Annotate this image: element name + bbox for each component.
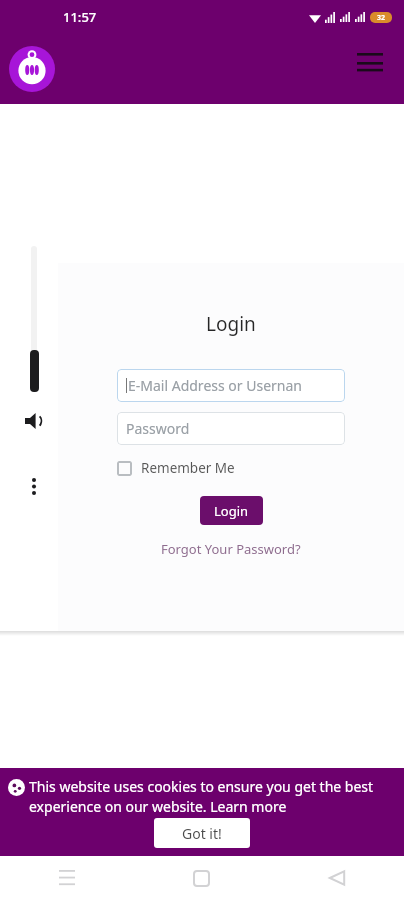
staticText: E-Mail Address or Usernan xyxy=(128,376,302,395)
button[interactable]: Forgot Your Password? xyxy=(161,540,301,558)
button[interactable]: Volume xyxy=(21,408,47,434)
staticText: Login xyxy=(214,502,249,520)
button[interactable]: Got it! xyxy=(154,818,250,848)
staticText: Got it! xyxy=(182,824,222,843)
button[interactable]: Back xyxy=(269,856,404,900)
button[interactable]: Home logo xyxy=(9,46,55,92)
staticText: 11:57 xyxy=(63,8,97,26)
button[interactable]: E-Mail Address or Usernan xyxy=(117,369,345,402)
button[interactable]: Login xyxy=(200,496,263,525)
button[interactable]: Home xyxy=(134,856,269,900)
button[interactable]: More volume options xyxy=(12,464,56,508)
staticText: Password xyxy=(126,419,190,438)
staticText: Remember Me xyxy=(141,459,235,477)
staticText: This website uses cookies to ensure you … xyxy=(29,777,392,816)
button[interactable]: Recents xyxy=(0,856,134,900)
button[interactable]: Remember Me xyxy=(117,459,345,477)
button[interactable]: Password xyxy=(117,412,345,445)
staticText: 32 xyxy=(377,13,386,23)
button[interactable]: Menu xyxy=(354,46,386,78)
staticText: Login xyxy=(206,311,256,337)
